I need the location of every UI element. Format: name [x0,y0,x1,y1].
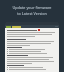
button[interactable]: Firmware update screenshot [5,22,59,72]
staticText: Update your firmware [0,5,64,10]
staticText: to Latest Version [0,11,64,16]
